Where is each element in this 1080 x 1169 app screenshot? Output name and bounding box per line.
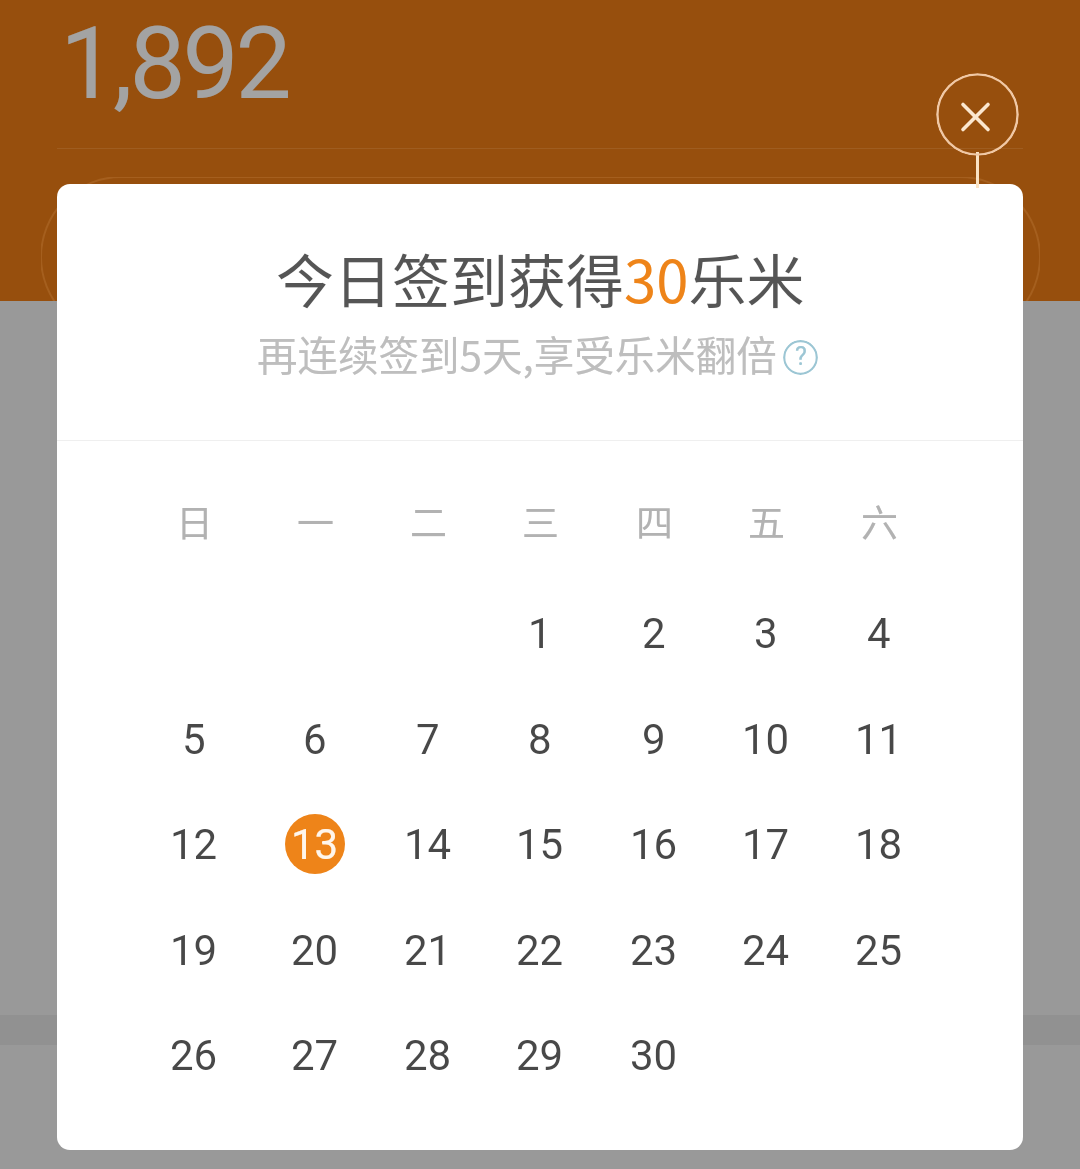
staticText: 26 [170,1031,218,1080]
button[interactable]: 12 [156,806,232,882]
button[interactable]: Help [783,340,818,375]
staticText: 12 [170,820,218,869]
button[interactable]: 17 [728,806,804,882]
staticText: 4 [867,609,891,658]
staticText: 28 [404,1031,452,1080]
button[interactable]: 29 [502,1017,578,1093]
staticText: 21 [404,926,452,975]
staticText: 17 [742,820,790,869]
staticText: 11 [855,715,903,764]
button[interactable]: 18 [841,806,917,882]
button[interactable]: Close [936,73,1019,156]
staticText: 1,892 [60,5,289,122]
staticText: 7 [416,715,440,764]
staticText: 14 [404,820,452,869]
staticText: 今日签到获得30乐米 [276,236,805,320]
staticText: 6 [303,715,327,764]
staticText: 四 [636,494,673,548]
staticText: 2 [642,609,666,658]
staticText: 3 [754,609,778,658]
button[interactable]: 6 [277,701,353,777]
button[interactable]: 9 [616,701,692,777]
button[interactable]: 16 [616,806,692,882]
button[interactable]: 13 [285,814,345,874]
button[interactable]: 5 [156,701,232,777]
button[interactable]: 3 [728,595,804,671]
staticText: 18 [855,820,903,869]
staticText: 25 [855,926,903,975]
staticText: 23 [630,926,678,975]
button[interactable]: 1 [502,595,578,671]
staticText: 日 [176,494,213,548]
button[interactable]: 27 [277,1017,353,1093]
staticText: 三 [522,494,559,548]
staticText: 27 [291,1031,339,1080]
button[interactable]: 24 [728,912,804,988]
staticText: 五 [748,494,785,548]
button[interactable]: 26 [156,1017,232,1093]
staticText: 29 [516,1031,564,1080]
staticText: 再连续签到5天,享受乐米翻倍 [257,324,777,383]
staticText: 24 [742,926,790,975]
staticText: 15 [516,820,564,869]
staticText: 19 [170,926,218,975]
staticText: ? [795,342,807,371]
staticText: 一 [297,494,334,548]
button[interactable]: 8 [502,701,578,777]
button[interactable]: 19 [156,912,232,988]
button[interactable]: 22 [502,912,578,988]
staticText: 22 [516,926,564,975]
button[interactable]: 7 [390,701,466,777]
button[interactable]: 11 [841,701,917,777]
button[interactable]: 20 [277,912,353,988]
staticText: 二 [410,494,447,548]
staticText: 20 [291,926,339,975]
staticText: 9 [642,715,666,764]
button[interactable]: 14 [390,806,466,882]
button[interactable]: 21 [390,912,466,988]
staticText: 5 [182,715,206,764]
button[interactable]: 30 [616,1017,692,1093]
staticText: 10 [742,715,790,764]
button[interactable]: 10 [728,701,804,777]
staticText: 30 [630,1031,678,1080]
staticText: 六 [861,494,898,548]
staticText: 13 [291,820,339,869]
button[interactable]: 25 [841,912,917,988]
button[interactable]: 28 [390,1017,466,1093]
staticText: 1 [528,609,552,658]
button[interactable]: 2 [616,595,692,671]
button[interactable]: 23 [616,912,692,988]
button[interactable]: 15 [502,806,578,882]
button[interactable]: 4 [841,595,917,671]
staticText: 16 [630,820,678,869]
staticText: 8 [528,715,552,764]
